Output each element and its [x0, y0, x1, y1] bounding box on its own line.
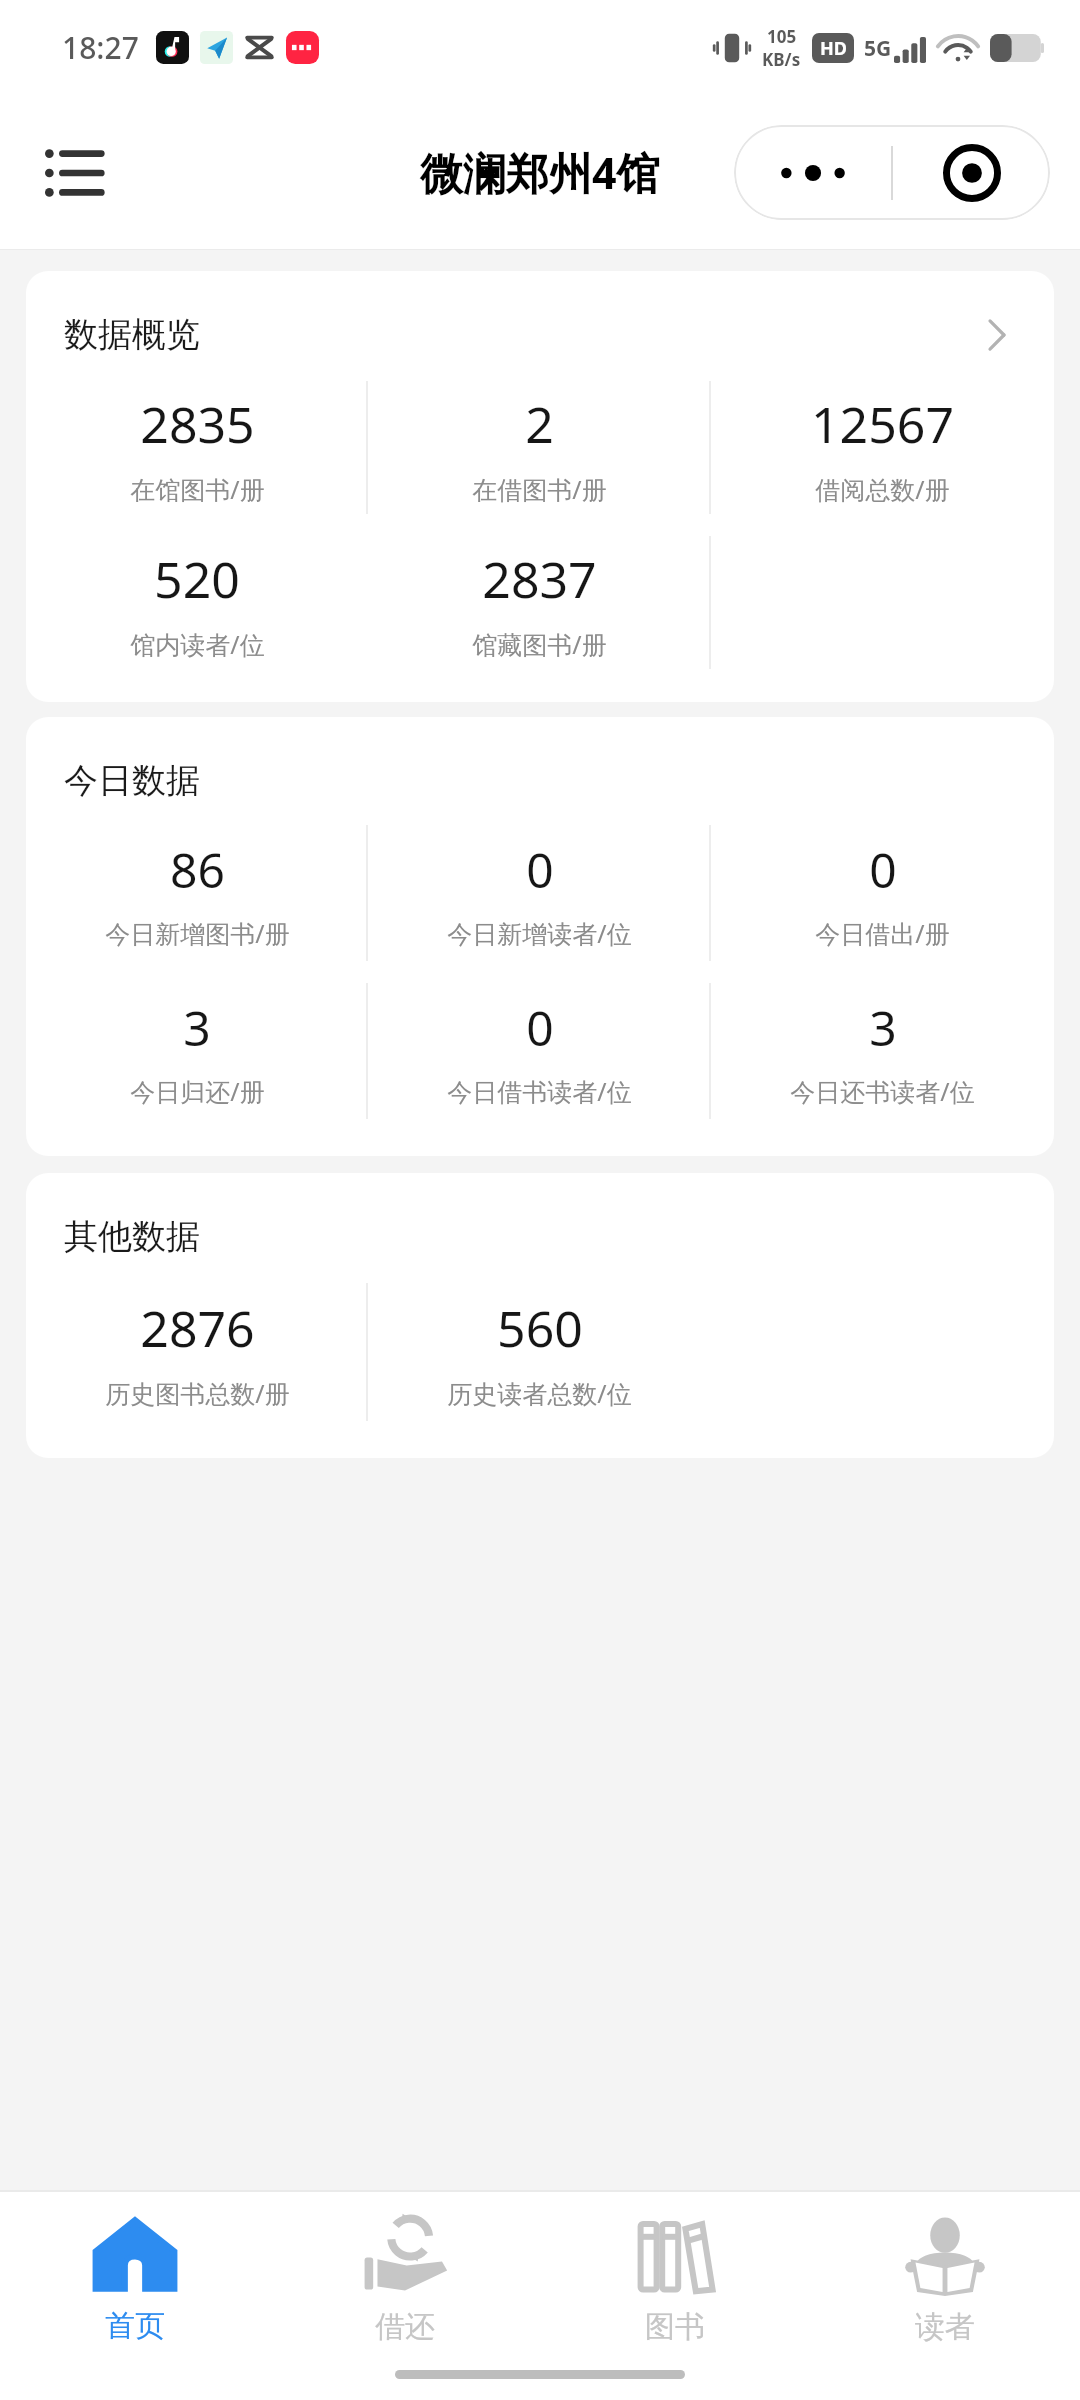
staticText: 3: [869, 995, 897, 1060]
staticText: 其他数据: [64, 1215, 200, 1258]
staticText: 今日借出/册: [815, 916, 950, 950]
staticText: KB/s: [762, 48, 801, 71]
button[interactable]: 首页: [0, 2192, 270, 2370]
staticText: 借还: [375, 2308, 435, 2346]
button[interactable]: 读者: [810, 2192, 1080, 2370]
staticText: 今日借书读者/位: [447, 1074, 632, 1108]
button[interactable]: More details: [976, 314, 1018, 356]
staticText: 今日新增图书/册: [105, 916, 290, 950]
staticText: 微澜郑州4馆: [420, 143, 660, 202]
staticText: 今日还书读者/位: [790, 1074, 975, 1108]
staticText: 3: [183, 995, 211, 1060]
staticText: 2835: [140, 390, 255, 458]
button[interactable]: 图书: [540, 2192, 810, 2370]
button[interactable]: More: [734, 125, 891, 220]
staticText: 520: [154, 545, 240, 613]
staticText: 历史图书总数/册: [105, 1376, 290, 1410]
staticText: 馆藏图书/册: [472, 627, 607, 661]
staticText: 0: [869, 837, 897, 902]
button[interactable]: 借还: [270, 2192, 540, 2370]
staticText: 在馆图书/册: [130, 472, 265, 506]
staticText: 今日数据: [64, 759, 200, 802]
staticText: 历史读者总数/位: [447, 1376, 632, 1410]
staticText: 读者: [915, 2308, 975, 2346]
staticText: 2837: [482, 545, 597, 613]
staticText: HD: [820, 36, 847, 61]
staticText: 560: [497, 1294, 583, 1362]
staticText: 12567: [811, 390, 954, 458]
staticText: 86: [170, 837, 225, 902]
staticText: 105: [767, 25, 797, 48]
staticText: 在借图书/册: [472, 472, 607, 506]
staticText: 图书: [645, 2308, 705, 2346]
staticText: 今日归还/册: [130, 1074, 265, 1108]
staticText: 2876: [140, 1294, 255, 1362]
staticText: 18:27: [62, 27, 139, 68]
staticText: 数据概览: [64, 313, 200, 356]
staticText: 今日新增读者/位: [447, 916, 632, 950]
staticText: 5G: [864, 34, 892, 63]
button[interactable]: Menu: [30, 129, 118, 217]
staticText: 借阅总数/册: [815, 472, 950, 506]
button[interactable]: Close mini program: [893, 125, 1050, 220]
staticText: 2: [525, 390, 554, 458]
staticText: 0: [526, 837, 554, 902]
staticText: 0: [526, 995, 554, 1060]
staticText: 馆内读者/位: [130, 627, 265, 661]
staticText: 首页: [105, 2307, 165, 2345]
